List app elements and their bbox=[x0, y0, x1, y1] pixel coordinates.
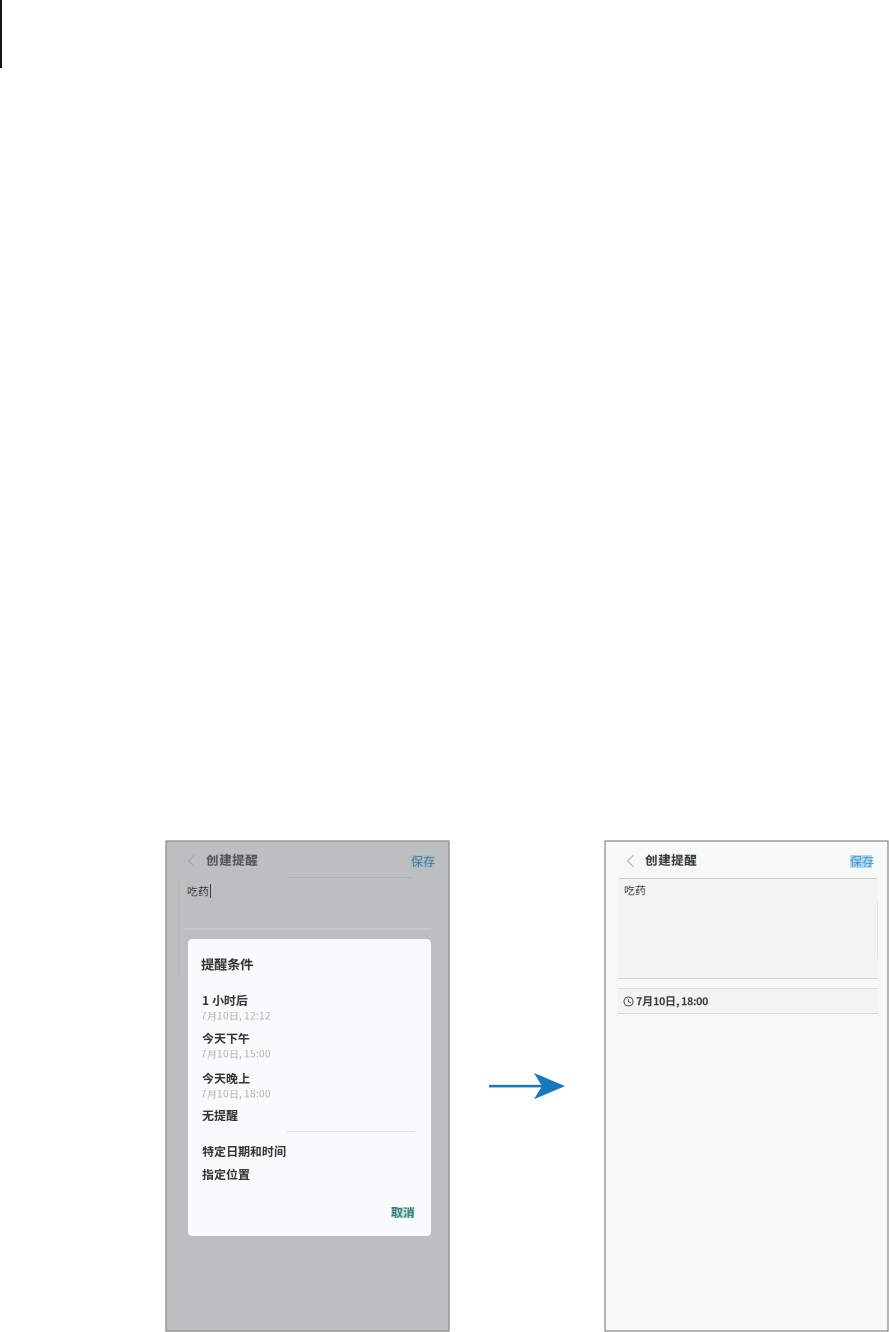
staticText: 无提醒 bbox=[202, 1106, 238, 1123]
button[interactable]: 指定位置 bbox=[202, 1165, 416, 1182]
staticText: 7月10日, 12:12 bbox=[201, 1008, 271, 1022]
button[interactable]: 7月10日, 18:00 bbox=[618, 989, 878, 1013]
staticText: 7月10日, 18:00 bbox=[636, 993, 708, 1008]
staticText: 今天下午 bbox=[202, 1029, 250, 1046]
staticText: 今天晚上 bbox=[202, 1069, 250, 1086]
staticText: 创建提醒 bbox=[206, 850, 258, 868]
staticText: 提醒条件 bbox=[201, 954, 253, 973]
button[interactable]: 今天晚上 bbox=[202, 1069, 416, 1100]
staticText: 特定日期和时间 bbox=[202, 1142, 286, 1159]
staticText: 保存 bbox=[850, 852, 874, 869]
button[interactable]: 1 小时后 bbox=[202, 991, 416, 1022]
button[interactable]: 今天下午 bbox=[202, 1029, 416, 1060]
staticText: 1 小时后 bbox=[202, 991, 248, 1008]
staticText: 创建提醒 bbox=[645, 850, 697, 868]
staticText: 指定位置 bbox=[202, 1165, 250, 1182]
staticText: 7月10日, 15:00 bbox=[201, 1046, 271, 1060]
button[interactable]: Back bbox=[184, 851, 198, 871]
button[interactable]: 取消 bbox=[388, 1200, 418, 1223]
button[interactable]: 保存 bbox=[407, 848, 439, 873]
staticText: 吃药 bbox=[187, 883, 209, 898]
button[interactable]: Back bbox=[623, 851, 637, 871]
button[interactable]: 无提醒 bbox=[202, 1106, 416, 1123]
staticText: 吃药 bbox=[624, 882, 646, 897]
staticText: 保存 bbox=[411, 852, 435, 869]
staticText: 取消 bbox=[391, 1203, 415, 1220]
button[interactable]: 保存 bbox=[846, 848, 878, 873]
button[interactable]: 特定日期和时间 bbox=[202, 1142, 416, 1159]
staticText: 7月10日, 18:00 bbox=[201, 1086, 271, 1100]
